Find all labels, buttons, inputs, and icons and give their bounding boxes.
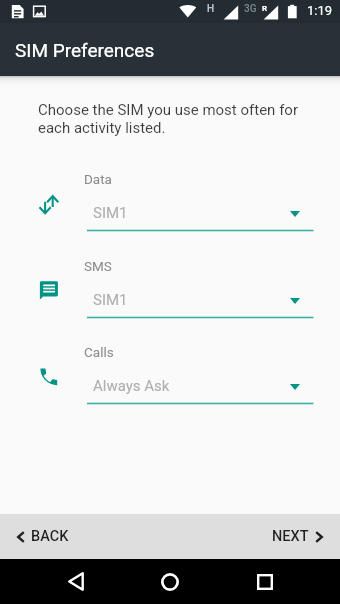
button[interactable]: Data — [0, 167, 340, 239]
button[interactable]: SMS — [0, 254, 340, 326]
staticText: SIM1 — [93, 204, 128, 222]
staticText: Data — [84, 171, 112, 187]
staticText: SIM1 — [93, 291, 128, 309]
button[interactable]: Calls — [0, 340, 340, 412]
staticText: Choose the SIM you use most often for ea… — [38, 101, 298, 137]
staticText: Calls — [84, 344, 114, 360]
staticText: H — [207, 3, 215, 15]
staticText: R — [262, 4, 268, 13]
staticText: 1:19 — [307, 3, 333, 18]
button[interactable]: BACK — [0, 518, 85, 555]
button[interactable]: Home — [147, 559, 192, 604]
button[interactable]: Back — [53, 559, 98, 604]
staticText: BACK — [31, 528, 69, 545]
staticText: 3G — [244, 3, 257, 15]
button[interactable]: NEXT — [256, 518, 340, 555]
button[interactable]: Recents — [242, 559, 287, 604]
staticText: NEXT — [272, 528, 309, 545]
staticText: SMS — [84, 258, 112, 274]
staticText: Always Ask — [93, 377, 170, 395]
staticText: SIM Preferences — [15, 39, 155, 61]
